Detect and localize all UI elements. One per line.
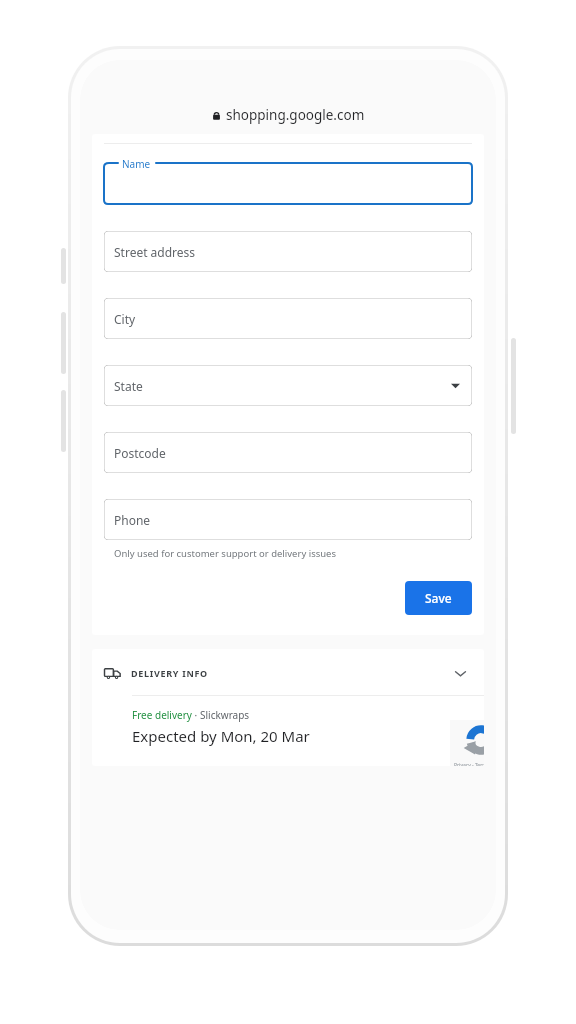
button[interactable]: Street address (104, 231, 472, 272)
staticText: Phone (114, 512, 151, 528)
staticText: State (114, 378, 143, 394)
staticText: Only used for customer support or delive… (114, 547, 337, 560)
button[interactable]: DELIVERY INFO (92, 649, 484, 695)
button[interactable]: Collapse delivery info (450, 663, 470, 683)
button[interactable]: Save (405, 581, 472, 615)
staticText: Postcode (114, 445, 166, 461)
staticText: Expected by Mon, 20 Mar (132, 726, 310, 746)
staticText: Free delivery (132, 708, 192, 722)
button[interactable]: City (104, 298, 472, 339)
staticText: Slickwraps (200, 708, 250, 722)
staticText: Privacy - Terms (454, 762, 484, 766)
staticText: City (114, 311, 136, 327)
staticText: DELIVERY INFO (131, 667, 208, 679)
button[interactable]: Phone (104, 499, 472, 540)
staticText: Save (425, 590, 452, 606)
staticText: shopping.google.com (226, 106, 365, 124)
staticText: Name (122, 157, 151, 171)
button[interactable]: Name (104, 157, 472, 204)
staticText: · (192, 708, 200, 722)
button[interactable]: Postcode (104, 432, 472, 473)
button[interactable]: Privacy - Terms (450, 720, 484, 766)
staticText: Street address (114, 244, 196, 260)
button[interactable]: State (104, 365, 472, 406)
